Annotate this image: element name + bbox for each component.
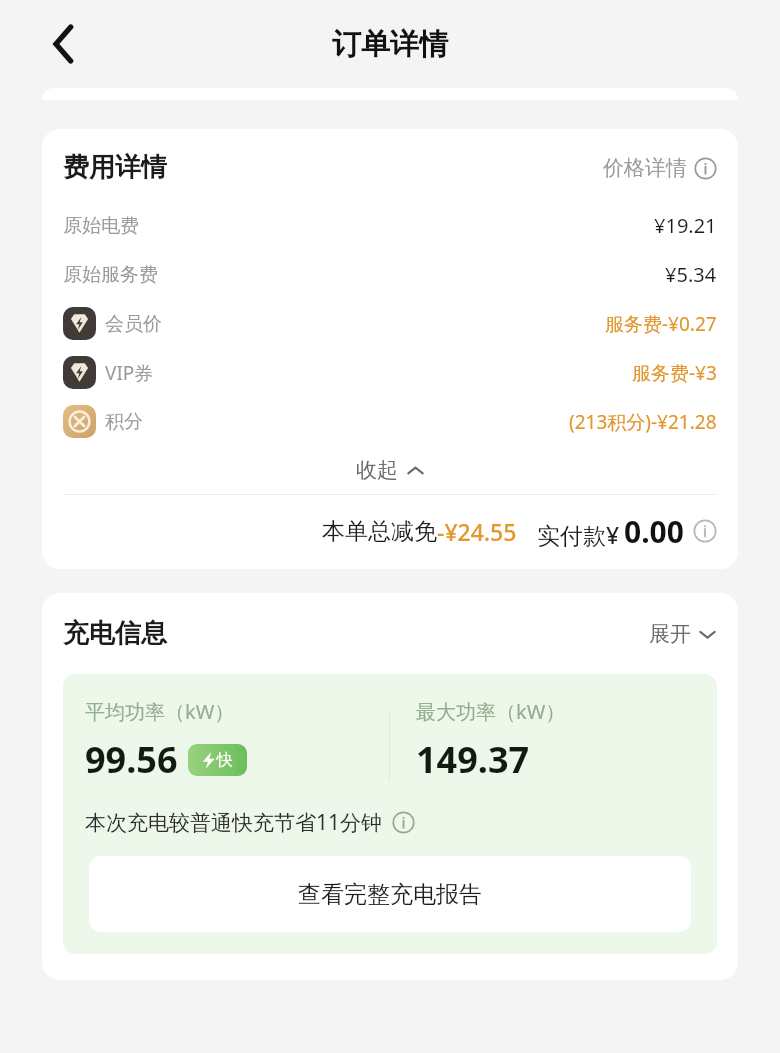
staticText: 会员价 (105, 312, 162, 336)
staticText: (213积分)-¥21.28 (569, 409, 717, 435)
staticText: VIP券 (105, 360, 154, 386)
staticText: 费用详情 (63, 151, 167, 184)
button[interactable]: 节省说明 (392, 811, 415, 834)
staticText: 最大功率（kW） (416, 698, 566, 725)
staticText: 订单详情 (332, 26, 448, 63)
staticText: 原始服务费 (63, 263, 158, 287)
staticText: 查看完整充电报告 (298, 880, 482, 909)
staticText: 服务费-¥3 (632, 360, 717, 386)
button[interactable]: 本次充电较普通快充节省11分钟 (85, 808, 415, 837)
staticText: 展开 (649, 621, 691, 647)
button[interactable]: 实付款说明 (693, 519, 717, 543)
staticText: 本单总减免 (322, 517, 437, 546)
staticText: 0.00 (624, 511, 684, 552)
button[interactable]: Back (40, 21, 86, 67)
staticText: 原始电费 (63, 214, 139, 238)
staticText: -¥24.55 (437, 516, 517, 547)
staticText: 149.37 (416, 735, 530, 784)
staticText: 积分 (105, 410, 143, 434)
button[interactable]: 收起 (63, 446, 717, 494)
button[interactable]: 展开 (649, 621, 717, 647)
staticText: 充电信息 (63, 617, 167, 650)
button[interactable]: 查看完整充电报告 (89, 856, 691, 932)
staticText: 平均功率（kW） (85, 698, 235, 725)
staticText: 本次充电较普通快充节省11分钟 (85, 808, 383, 837)
staticText: 实付款¥ (537, 519, 620, 550)
staticText: 服务费-¥0.27 (605, 311, 717, 337)
staticText: 收起 (356, 457, 398, 483)
staticText: 快 (217, 750, 233, 770)
button[interactable]: 价格详情 (603, 155, 717, 181)
staticText: 99.56 (85, 735, 178, 784)
staticText: ¥19.21 (654, 212, 717, 239)
staticText: 价格详情 (603, 155, 687, 181)
button[interactable]: 价格详情 (694, 157, 717, 180)
staticText: ¥5.34 (665, 261, 717, 288)
